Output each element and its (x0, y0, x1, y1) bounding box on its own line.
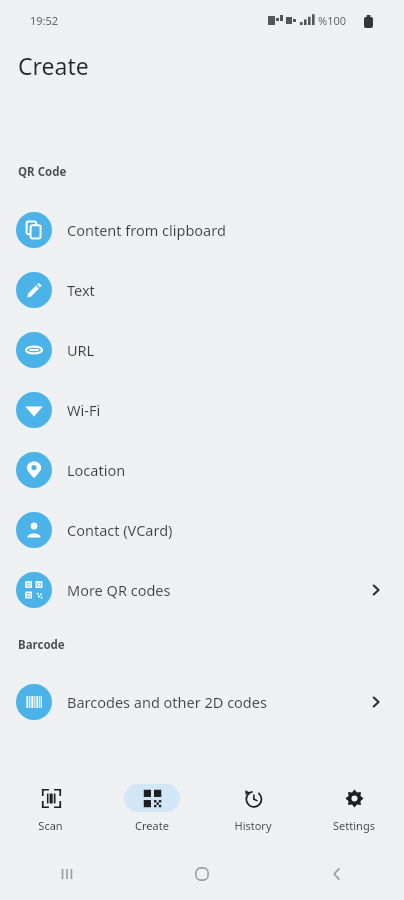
button[interactable]: Scan (0, 780, 101, 842)
staticText: Create (135, 818, 169, 833)
button[interactable]: More QR codes (0, 566, 404, 614)
staticText: More QR codes (67, 580, 171, 600)
staticText: QR Code (18, 164, 67, 180)
other: Home (194, 866, 210, 882)
button[interactable]: URL (0, 326, 404, 374)
staticText: 19:52 (30, 13, 59, 28)
staticText: Location (67, 460, 126, 480)
button[interactable]: Contact (VCard) (0, 506, 404, 554)
staticText: Settings (333, 818, 375, 833)
staticText: Contact (VCard) (67, 520, 173, 540)
staticText: Wi-Fi (67, 400, 101, 420)
staticText: Content from clipboard (67, 220, 226, 240)
staticText: Barcode (18, 637, 65, 653)
other: Recents (59, 866, 75, 882)
button[interactable]: Create (101, 780, 202, 842)
staticText: URL (67, 340, 95, 360)
staticText: %100 (318, 13, 347, 28)
button[interactable]: Location (0, 446, 404, 494)
button[interactable]: Text (0, 266, 404, 314)
button[interactable]: Barcodes and other 2D codes (0, 678, 404, 726)
staticText: Text (67, 280, 95, 300)
button[interactable]: Wi-Fi (0, 386, 404, 434)
staticText: Barcodes and other 2D codes (67, 692, 267, 712)
staticText: History (234, 818, 272, 833)
button[interactable]: History (202, 780, 303, 842)
button[interactable]: Content from clipboard (0, 206, 404, 254)
staticText: Scan (38, 818, 63, 833)
other: Back (329, 866, 345, 882)
staticText: Create (18, 50, 89, 81)
button[interactable]: Settings (303, 780, 404, 842)
